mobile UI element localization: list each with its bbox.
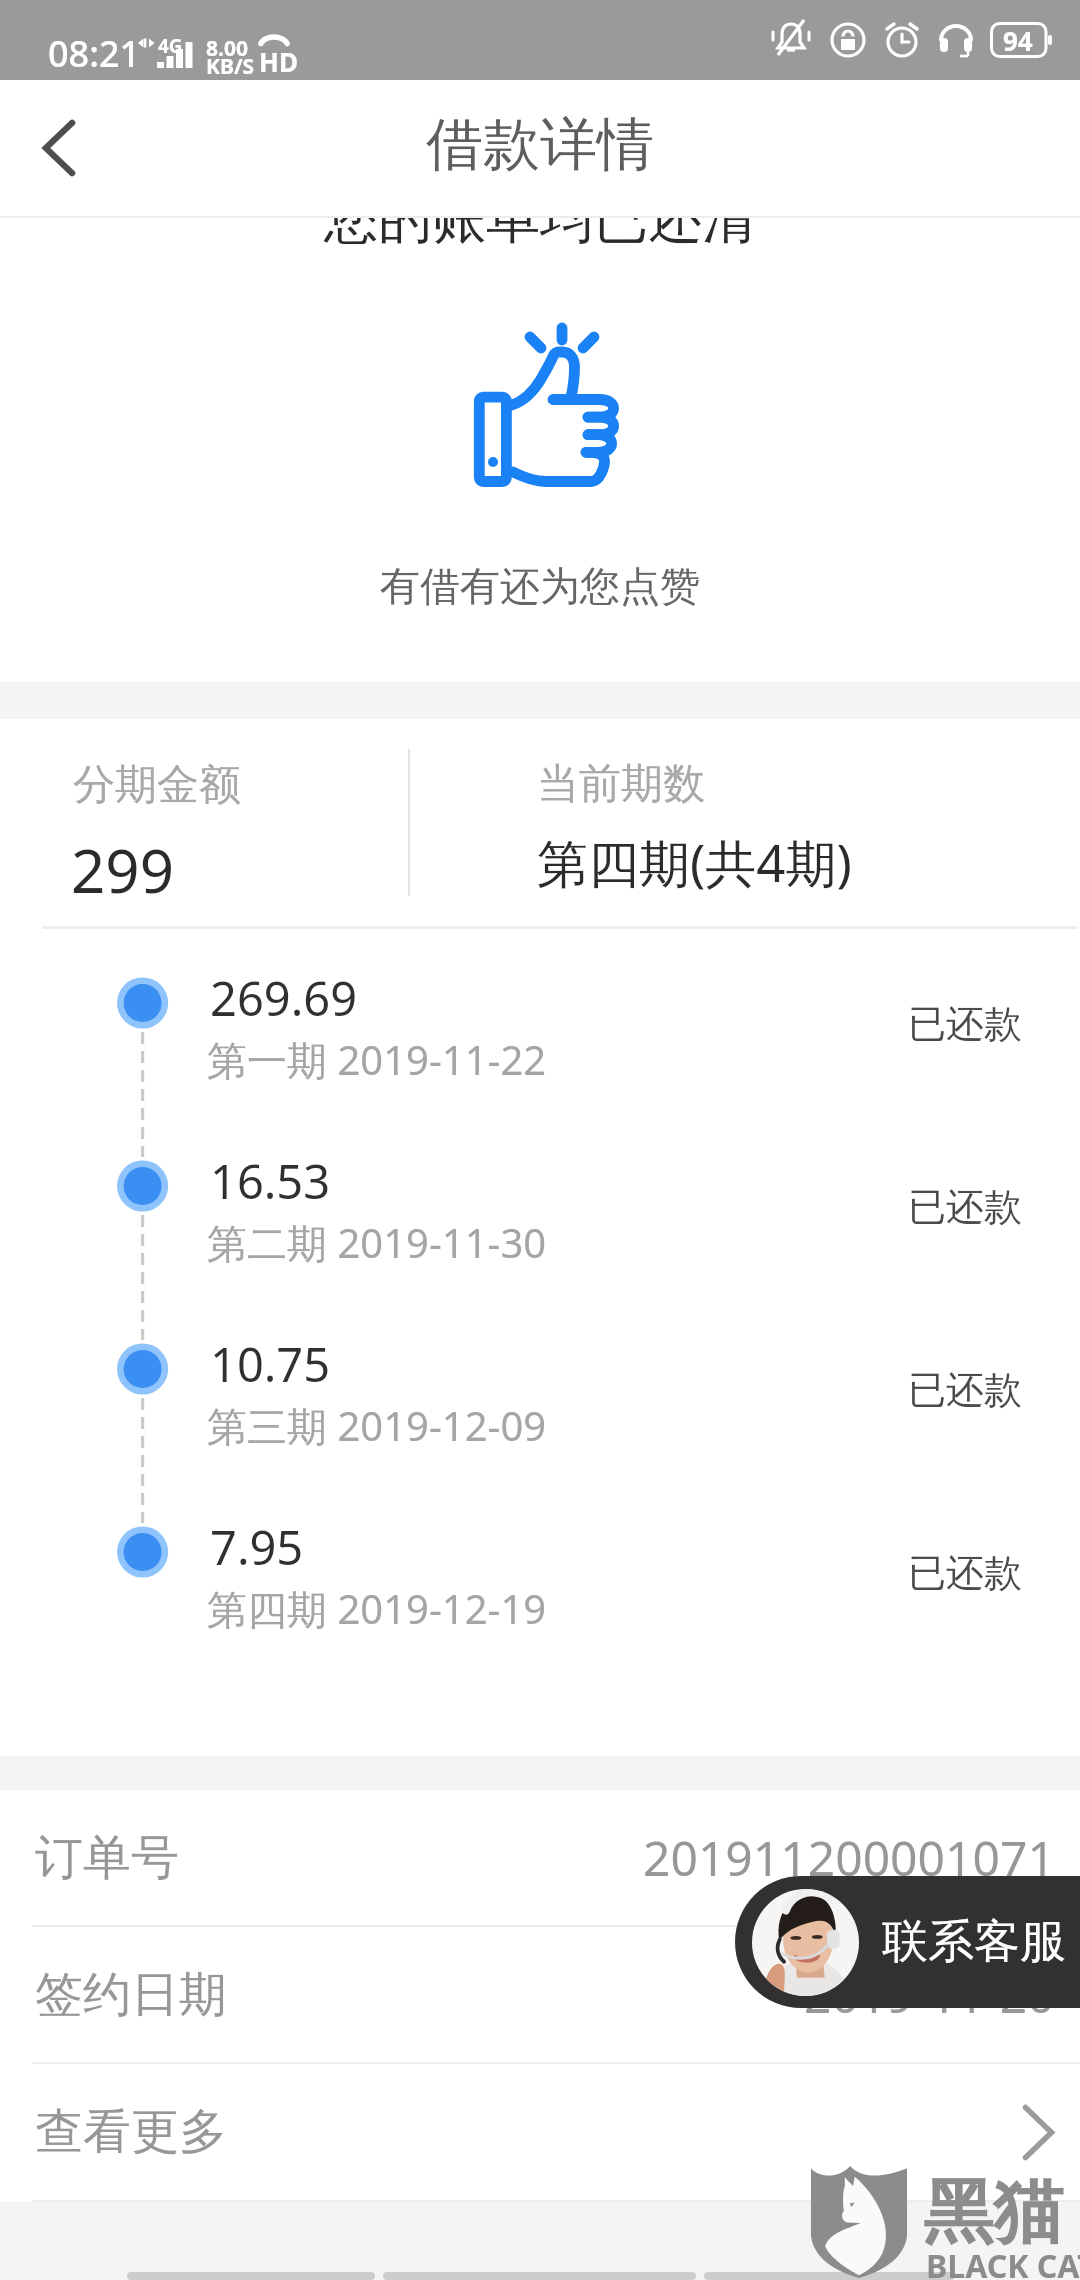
staticText: KB/S: [206, 52, 255, 81]
button[interactable]: 联系客服: [735, 1876, 1080, 2008]
staticText: BLACK CAT: [926, 2244, 1080, 2280]
staticText: 第四期(共4期): [537, 827, 852, 897]
staticText: 有借有还为您点赞: [380, 561, 700, 611]
staticText: 第一期 2019-11-22: [207, 1032, 547, 1087]
staticText: 已还款: [908, 1366, 1022, 1414]
button[interactable]: 订单号: [0, 1790, 1080, 1925]
staticText: 联系客服: [882, 1913, 1066, 1971]
staticText: 已还款: [908, 1549, 1022, 1597]
staticText: 借款详情: [426, 109, 654, 181]
staticText: 查看更多: [35, 2102, 227, 2162]
button[interactable]: Back: [3, 80, 115, 216]
staticText: 第四期 2019-12-19: [207, 1581, 547, 1636]
staticText: 您的账单均已还清: [324, 185, 756, 253]
button[interactable]: 签约日期: [0, 1927, 1080, 2062]
staticText: 08:21: [48, 29, 141, 78]
staticText: 分期金额: [73, 759, 241, 812]
staticText: 201911200001071: [643, 1825, 1055, 1890]
staticText: 第二期 2019-11-30: [207, 1215, 547, 1270]
staticText: HD: [259, 44, 298, 79]
button[interactable]: 查看更多: [0, 2064, 1080, 2200]
staticText: 10.75: [210, 1332, 331, 1396]
staticText: 8.00: [206, 34, 248, 63]
staticText: 黑猫: [923, 2169, 1063, 2257]
staticText: 已还款: [908, 1183, 1022, 1231]
staticText: 第三期 2019-12-09: [207, 1398, 547, 1453]
staticText: 299: [71, 829, 174, 911]
staticText: 签约日期: [35, 1965, 227, 2025]
staticText: 94: [1003, 23, 1033, 58]
staticText: 当前期数: [537, 758, 705, 811]
staticText: 7.95: [210, 1515, 304, 1579]
staticText: 4G: [158, 33, 183, 59]
staticText: 订单号: [35, 1828, 179, 1888]
staticText: 已还款: [908, 1000, 1022, 1048]
staticText: 2019-11-20: [804, 1962, 1055, 2027]
staticText: 16.53: [210, 1149, 331, 1213]
staticText: 269.69: [210, 966, 358, 1030]
